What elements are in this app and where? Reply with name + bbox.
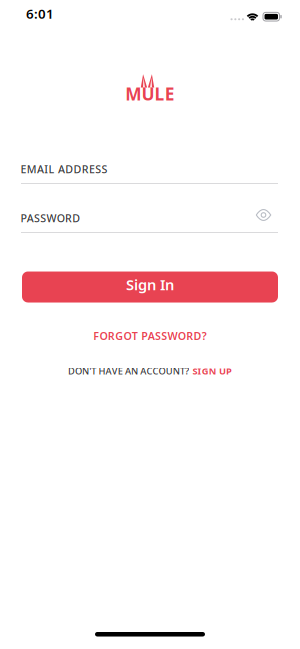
staticText: EMAIL ADDRESS: [20, 162, 107, 176]
button[interactable]: FORGOT PASSWORD?: [93, 329, 207, 343]
staticText: Sign In: [126, 275, 174, 294]
staticText: FORGOT PASSWORD?: [93, 329, 207, 343]
staticText: DON'T HAVE AN ACCOUNT?: [68, 365, 189, 377]
staticText: PASSWORD: [20, 211, 80, 225]
button[interactable]: SIGN UP: [192, 365, 232, 377]
staticText: MULE: [125, 82, 175, 105]
button[interactable]: Sign In: [22, 271, 278, 302]
staticText: SIGN UP: [192, 365, 232, 377]
button[interactable]: Show password: [255, 209, 271, 221]
staticText: 6:01: [26, 5, 54, 22]
